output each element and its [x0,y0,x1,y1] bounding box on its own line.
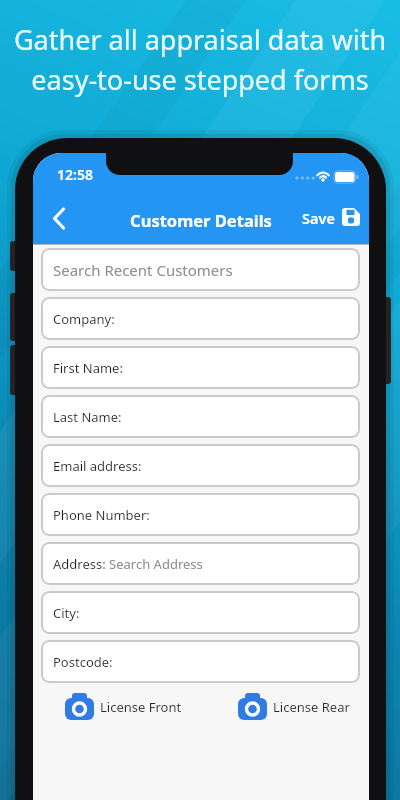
staticText: Email address: [53,457,142,475]
staticText: Company: [53,310,115,328]
button[interactable]: Phone Number: [41,493,360,536]
staticText: Address: Search Address [53,555,203,573]
button[interactable]: Company: [41,297,360,340]
staticText: Postcode: [53,653,113,671]
staticText: City: [53,604,80,622]
staticText: Customer Details [33,209,369,231]
staticText: Gather all appraisal data with [0,21,400,58]
staticText: Save [302,208,335,228]
staticText: Phone Number: [53,506,150,524]
button[interactable]: City: [41,591,360,634]
button[interactable]: Email address: [41,444,360,487]
button[interactable]: License Rear [238,691,368,723]
staticText: License Front [100,698,182,716]
staticText: Last Name: [53,408,122,426]
button[interactable]: Postcode: [41,640,360,683]
staticText: Search Recent Customers [53,260,233,280]
staticText: License Rear [273,698,350,716]
button[interactable] [45,200,75,234]
staticText: First Name: [53,359,123,377]
button[interactable]: License Front [65,691,195,723]
button[interactable]: First Name: [41,346,360,389]
button[interactable]: Last Name: [41,395,360,438]
staticText: easy-to-use stepped forms [0,61,400,98]
button[interactable]: Address: Search Address [41,542,360,585]
button[interactable]: Save [299,201,365,233]
staticText: 12:58 [57,165,93,184]
button[interactable]: Search Recent Customers [41,248,360,291]
